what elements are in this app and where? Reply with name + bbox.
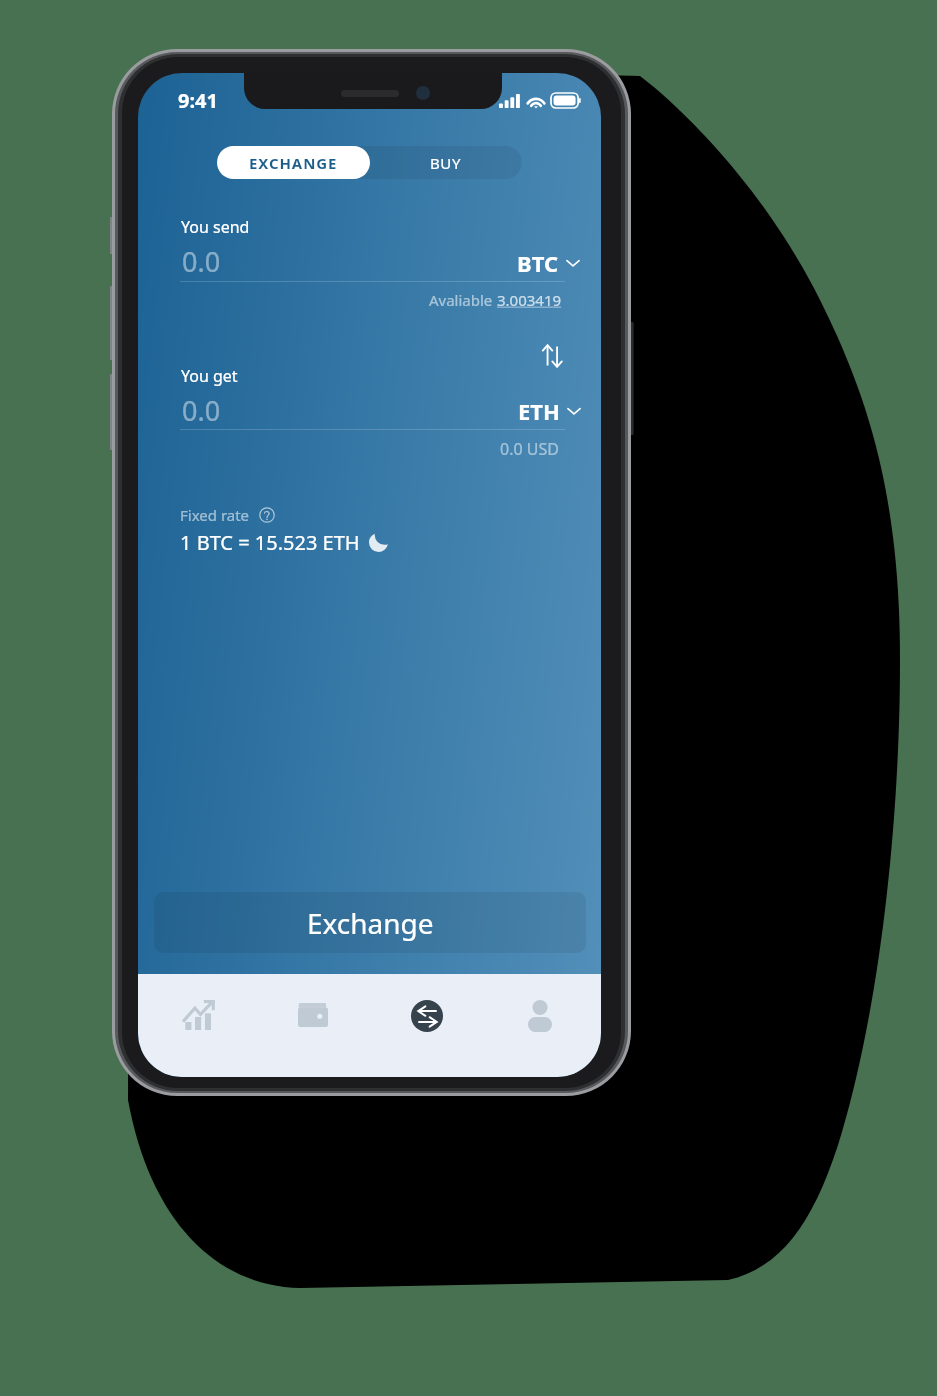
- staticText: Exchange: [307, 904, 434, 942]
- button[interactable]: Exchange: [154, 892, 586, 953]
- button[interactable]: Wallet: [253, 974, 369, 1077]
- button[interactable]: BUY: [370, 146, 522, 179]
- staticText: BUY: [430, 153, 462, 173]
- other: Select currency: [565, 255, 581, 271]
- other: Select currency: [566, 403, 582, 419]
- button[interactable]: EXCHANGE: [217, 146, 370, 179]
- staticText: 0.0 USD: [500, 438, 559, 460]
- staticText: 3.003419: [497, 290, 562, 310]
- button[interactable]: Markets: [138, 974, 253, 1077]
- staticText: Avaliable: [429, 290, 497, 310]
- staticText: You get: [181, 365, 238, 387]
- other: Profile: [528, 1000, 552, 1032]
- button[interactable]: What is fixed rate: [259, 507, 275, 523]
- button[interactable]: Swap currencies: [536, 339, 570, 373]
- other: Wallet: [298, 1003, 328, 1027]
- other: Exchange: [411, 1000, 443, 1032]
- staticText: 9:41: [178, 87, 218, 114]
- staticText: You send: [181, 216, 250, 238]
- staticText: EXCHANGE: [249, 153, 338, 173]
- other: Markets: [182, 1000, 215, 1030]
- staticText: ETH: [518, 396, 560, 426]
- staticText: 0.0: [182, 243, 221, 280]
- staticText: BTC: [517, 248, 559, 278]
- button[interactable]: Exchange: [369, 974, 485, 1077]
- staticText: Fixed rate: [180, 505, 250, 525]
- staticText: 0.0: [182, 392, 221, 429]
- button[interactable]: Profile: [485, 974, 601, 1077]
- staticText: 1 BTC = 15.523 ETH: [180, 529, 360, 556]
